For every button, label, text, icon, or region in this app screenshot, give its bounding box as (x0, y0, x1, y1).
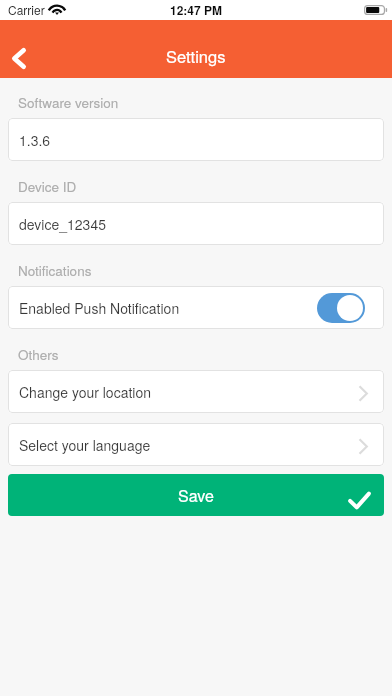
staticText: Device ID (18, 177, 77, 196)
staticText: Others (18, 345, 59, 364)
staticText: 1.3.6 (19, 130, 51, 150)
staticText: Enabled Push Notification (19, 298, 180, 318)
button[interactable]: Enabled Push Notification toggle (317, 293, 365, 323)
staticText: Change your location (19, 382, 152, 402)
staticText: Select your language (19, 435, 151, 455)
button[interactable]: Select your language (8, 423, 384, 466)
staticText: Save (178, 484, 214, 507)
button[interactable]: Save (8, 474, 384, 516)
staticText: Notifications (18, 261, 92, 280)
staticText: Software version (18, 93, 119, 112)
staticText: device_12345 (19, 214, 106, 234)
button[interactable]: Back (0, 37, 38, 79)
staticText: Settings (166, 44, 226, 68)
button[interactable]: Change your location (8, 370, 384, 413)
staticText: 12:47 PM (170, 1, 223, 18)
staticText: Carrier (8, 1, 45, 18)
